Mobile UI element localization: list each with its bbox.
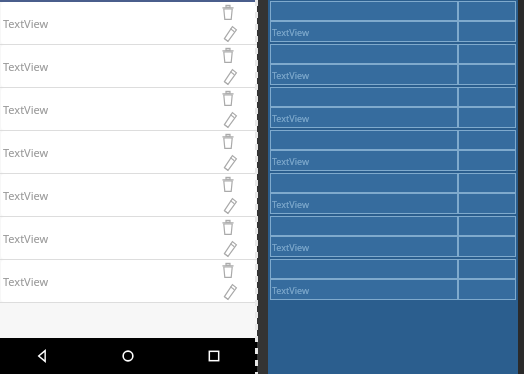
staticText: TextView <box>272 112 309 124</box>
button[interactable]: Edit <box>220 109 240 129</box>
button[interactable]: TextView <box>270 130 516 171</box>
button[interactable]: TextView <box>270 259 516 300</box>
button[interactable]: Delete <box>218 46 238 66</box>
button[interactable]: TextView <box>1 88 256 130</box>
staticText: TextView <box>3 274 49 289</box>
button[interactable]: Edit <box>220 195 240 215</box>
staticText: TextView <box>272 198 309 210</box>
button[interactable]: Edit <box>220 66 240 86</box>
staticText: TextView <box>3 102 49 117</box>
button[interactable]: TextView <box>1 174 256 216</box>
button[interactable]: Edit <box>220 152 240 172</box>
button[interactable]: Edit <box>220 281 240 301</box>
button[interactable]: Edit <box>220 23 240 43</box>
staticText: TextView <box>272 69 309 81</box>
staticText: TextView <box>272 284 309 296</box>
button[interactable]: TextView <box>1 131 256 173</box>
staticText: TextView <box>3 188 49 203</box>
button[interactable]: TextView <box>1 260 256 302</box>
staticText: TextView <box>3 16 49 31</box>
button[interactable]: Delete <box>218 89 238 109</box>
button[interactable]: Delete <box>218 218 238 238</box>
button[interactable]: Delete <box>218 132 238 152</box>
button[interactable]: Recents <box>171 338 257 374</box>
staticText: TextView <box>272 241 309 253</box>
staticText: TextView <box>3 59 49 74</box>
button[interactable]: TextView <box>270 173 516 214</box>
staticText: TextView <box>3 231 49 246</box>
button[interactable]: Delete <box>218 175 238 195</box>
button[interactable]: TextView <box>1 45 256 87</box>
button[interactable]: TextView <box>270 1 516 42</box>
button[interactable]: Delete <box>218 261 238 281</box>
button[interactable]: Delete <box>218 3 238 23</box>
button[interactable]: Edit <box>220 238 240 258</box>
button[interactable]: TextView <box>270 87 516 128</box>
button[interactable]: TextView <box>270 44 516 85</box>
staticText: TextView <box>272 155 309 167</box>
button[interactable]: TextView <box>1 2 256 44</box>
button[interactable]: Back <box>0 338 85 374</box>
staticText: TextView <box>272 26 309 38</box>
button[interactable]: Home <box>85 338 171 374</box>
button[interactable]: TextView <box>270 216 516 257</box>
button[interactable]: TextView <box>1 217 256 259</box>
staticText: TextView <box>3 145 49 160</box>
